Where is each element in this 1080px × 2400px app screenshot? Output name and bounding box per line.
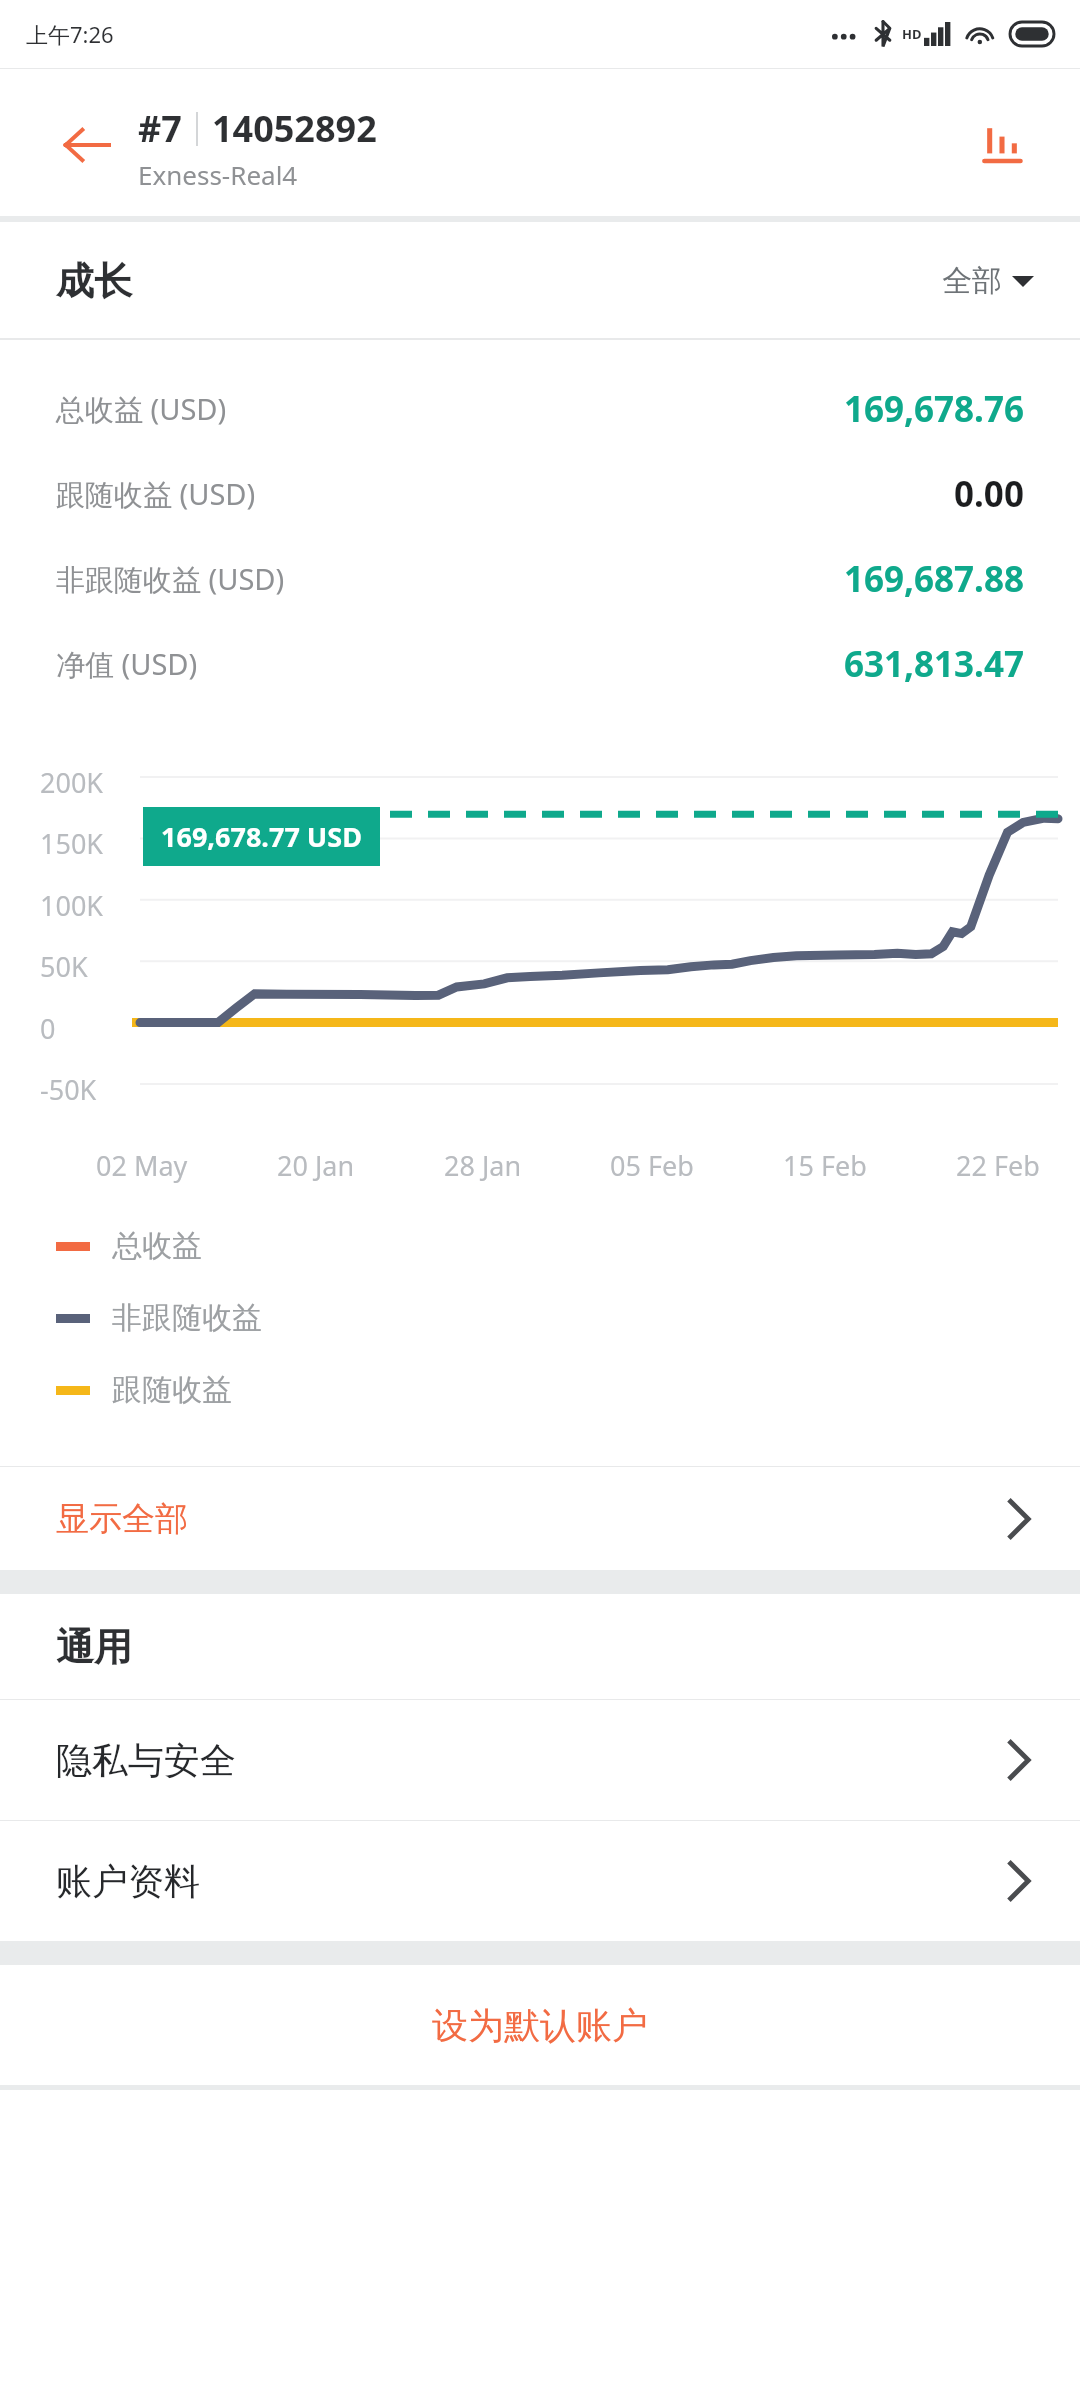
staticText: 100K [40,887,104,924]
staticText: 跟随收益 [112,1371,232,1409]
staticText: 成长 [56,257,132,305]
staticText: 上午7:26 [26,19,114,49]
staticText: 631,813.47 [844,640,1024,688]
button[interactable]: 显示全部 [0,1467,1080,1570]
staticText: 显示全部 [56,1498,188,1540]
staticText: 全部 [942,262,1002,300]
staticText: 非跟随收益 (USD) [56,559,285,599]
button[interactable]: Back [58,117,114,173]
staticText: 20 Jan [277,1147,355,1184]
staticText: 跟随收益 (USD) [56,474,256,514]
staticText: HD [902,25,922,43]
staticText: 02 May [96,1147,188,1184]
staticText: 200K [40,764,104,801]
button[interactable]: 账户资料 [0,1821,1080,1941]
staticText: 总收益 (USD) [56,389,227,429]
staticText: 隐私与安全 [56,1738,236,1783]
staticText: 总收益 [112,1227,202,1265]
staticText: 169,678.76 [844,385,1024,433]
button[interactable]: 隐私与安全 [0,1700,1080,1820]
button[interactable]: 全部 [942,262,1034,300]
staticText: 净值 (USD) [56,644,198,684]
staticText: -50K [40,1071,97,1108]
staticText: 169,687.88 [844,555,1024,603]
staticText: 22 Feb [956,1147,1040,1184]
staticText: 设为默认账户 [432,2003,648,2048]
staticText: 账户资料 [56,1859,200,1904]
staticText: 通用 [56,1623,132,1671]
staticText: 0 [40,1010,56,1047]
staticText: 14052892 [212,104,377,153]
staticText: 150K [40,825,104,862]
button[interactable]: 设为默认账户 [0,1965,1080,2085]
staticText: Exness-Real4 [138,157,298,192]
staticText: 169,678.77 USD [161,818,362,855]
staticText: 05 Feb [610,1147,694,1184]
staticText: 非跟随收益 [112,1299,262,1337]
staticText: 0.00 [954,470,1024,518]
staticText: 50K [40,948,88,985]
staticText: #7 [138,104,182,153]
staticText: 28 Jan [444,1147,522,1184]
button[interactable]: Statistics [964,107,1040,183]
staticText: 15 Feb [783,1147,867,1184]
